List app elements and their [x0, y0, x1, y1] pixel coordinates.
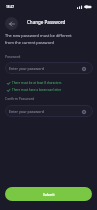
staticText: Confirm Password [5, 96, 35, 101]
button[interactable]: Show password [82, 110, 86, 114]
button[interactable]: Enter your password [5, 62, 93, 74]
button[interactable]: Enter your password [5, 105, 93, 117]
staticText: The new password must be different from … [5, 33, 81, 45]
staticText: Enter your password [9, 66, 44, 71]
button[interactable]: Back [5, 17, 18, 30]
staticText: Enter your password [9, 109, 44, 114]
staticText: Change Password [27, 19, 66, 25]
staticText: Password [5, 54, 21, 59]
staticText: There must have a lowercase letter [12, 88, 62, 92]
staticText: 18:27 [6, 5, 15, 9]
staticText: There must be at least 8 characters [12, 81, 62, 85]
button[interactable]: Submit [5, 187, 92, 201]
staticText: Submit [43, 192, 55, 196]
button[interactable]: Show password [82, 67, 86, 71]
